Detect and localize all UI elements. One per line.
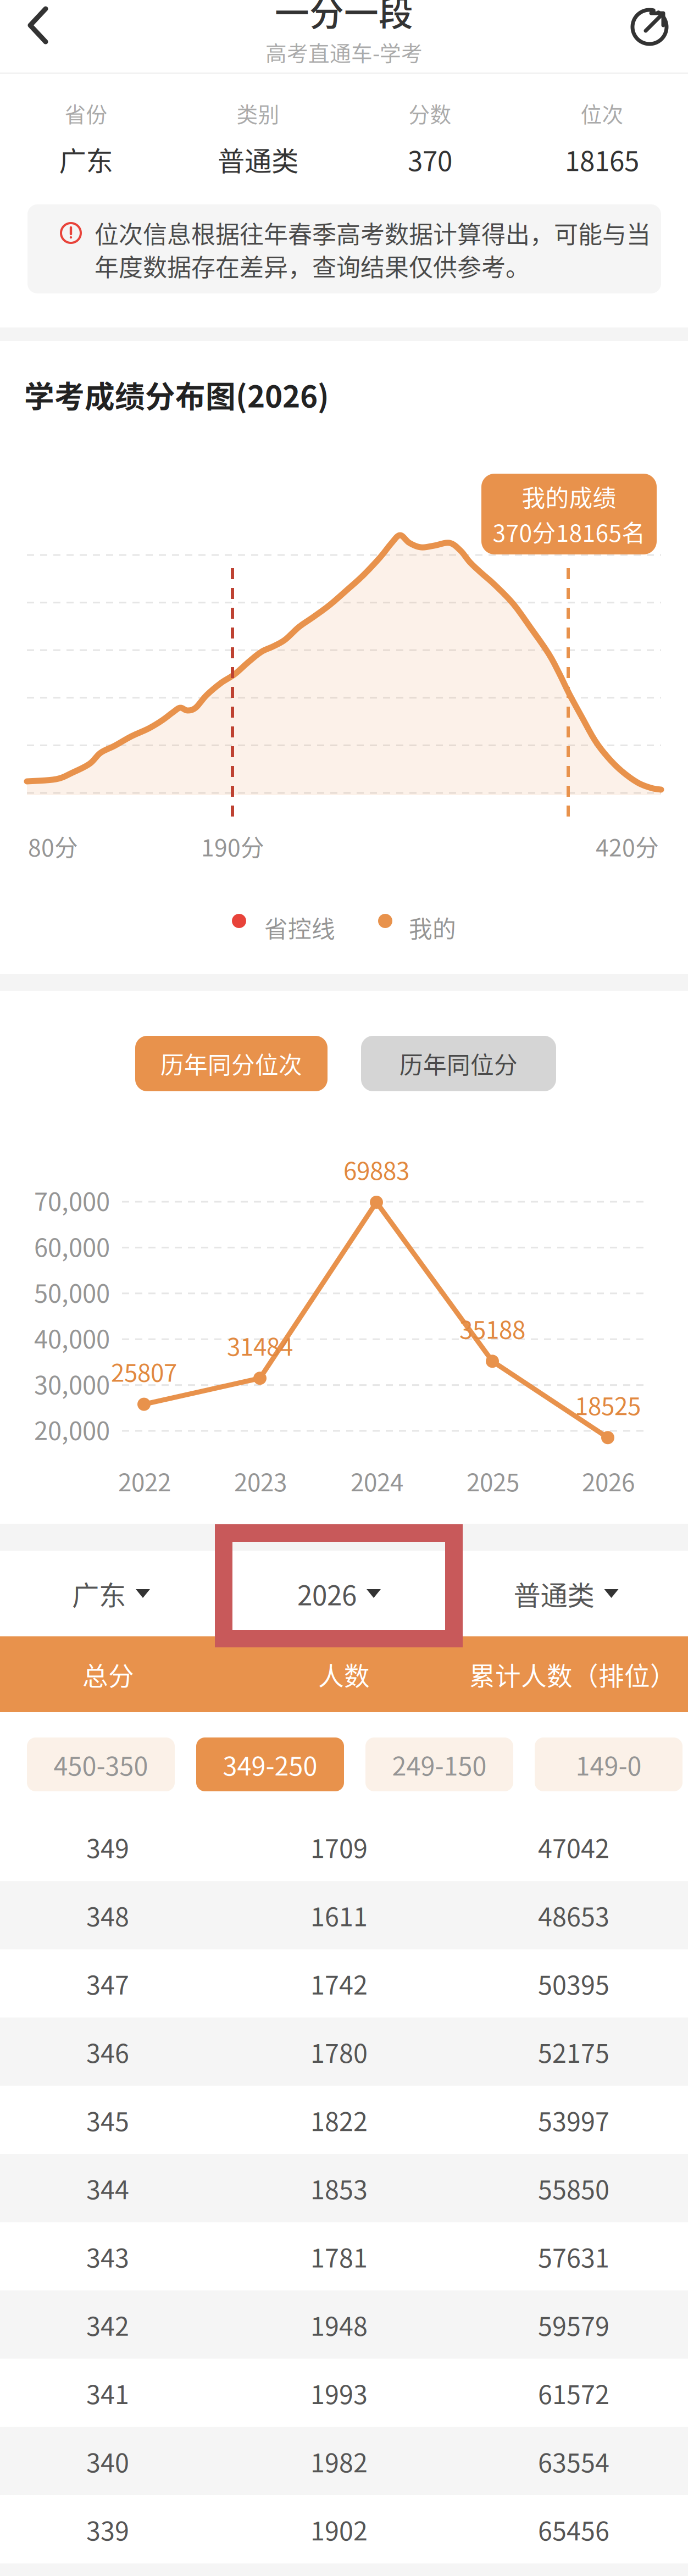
staticText: 广东	[59, 140, 113, 179]
staticText: 人数	[318, 1656, 370, 1693]
staticText: 50395	[538, 1965, 609, 2002]
button[interactable]: 450-350	[27, 1737, 175, 1791]
staticText: 342	[86, 2306, 129, 2343]
staticText: 1993	[310, 2374, 368, 2411]
staticText: 2024	[351, 1463, 403, 1498]
staticText: 345	[86, 2101, 129, 2138]
staticText: 149-0	[576, 1746, 642, 1783]
staticText: 1902	[310, 2511, 368, 2548]
staticText: 1781	[310, 2238, 368, 2275]
staticText: 344	[86, 2169, 129, 2207]
staticText: 年度数据存在差异，查询结果仅供参考。	[95, 248, 530, 283]
staticText: 35188	[459, 1311, 525, 1346]
staticText: 370分18165名	[493, 515, 645, 549]
staticText: 1709	[310, 1828, 368, 1865]
staticText: 2026	[582, 1463, 635, 1498]
staticText: 59579	[538, 2306, 609, 2343]
staticText: 65456	[538, 2511, 609, 2548]
staticText: 2026	[297, 1574, 357, 1613]
staticText: 18165	[565, 140, 639, 179]
staticText: 1948	[310, 2306, 368, 2343]
button[interactable]: 2026	[248, 1551, 430, 1636]
staticText: 450-350	[54, 1746, 148, 1783]
staticText: 55850	[538, 2169, 609, 2207]
staticText: 40,000	[34, 1319, 110, 1355]
staticText: 类别	[237, 98, 279, 129]
button[interactable]: 广东	[20, 1551, 202, 1636]
staticText: 1822	[310, 2101, 368, 2138]
staticText: 53997	[538, 2101, 609, 2138]
staticText: 累计人数（排位）	[469, 1656, 676, 1693]
staticText: 历年同分位次	[160, 1047, 302, 1081]
staticText: 31484	[227, 1328, 293, 1363]
staticText: 学考成绩分布图(2026)	[24, 373, 329, 416]
staticText: 一分一段	[275, 0, 413, 36]
staticText: 25807	[111, 1354, 177, 1389]
staticText: 2022	[118, 1463, 171, 1498]
staticText: 52175	[538, 2033, 609, 2070]
staticText: 总分	[82, 1656, 134, 1693]
staticText: 349-250	[223, 1746, 317, 1783]
staticText: 位次信息根据往年春季高考数据计算得出，可能与当	[95, 215, 651, 250]
staticText: 47042	[538, 1828, 609, 1865]
staticText: 70,000	[34, 1182, 110, 1218]
button[interactable]: 149-0	[535, 1737, 683, 1791]
staticText: 普通类	[514, 1574, 594, 1613]
staticText: 48653	[538, 1897, 609, 1934]
staticText: 249-150	[392, 1746, 487, 1783]
staticText: 343	[86, 2238, 129, 2275]
staticText: 370	[408, 140, 452, 179]
button[interactable]: 分享	[620, 0, 680, 53]
staticText: 高考直通车-学考	[265, 37, 423, 67]
staticText: 历年同位分	[400, 1047, 518, 1081]
staticText: 346	[86, 2033, 129, 2070]
staticText: 69883	[343, 1152, 409, 1187]
button[interactable]: 349-250	[196, 1737, 344, 1791]
staticText: 60,000	[34, 1228, 110, 1264]
staticText: 20,000	[34, 1411, 110, 1447]
button[interactable]: 249-150	[365, 1737, 513, 1791]
staticText: 我的	[409, 911, 456, 944]
staticText: 61572	[538, 2374, 609, 2411]
button[interactable]: 历年同位分	[361, 1036, 556, 1091]
staticText: 80分	[28, 829, 78, 863]
staticText: 省份	[65, 98, 107, 129]
button[interactable]: 返回	[8, 0, 68, 52]
staticText: 349	[86, 1828, 129, 1865]
staticText: 340	[86, 2442, 129, 2480]
staticText: 50,000	[34, 1274, 110, 1310]
staticText: 我的成绩	[522, 480, 616, 513]
staticText: 339	[86, 2511, 129, 2548]
button[interactable]: 历年同分位次	[135, 1036, 328, 1091]
staticText: 347	[86, 1965, 129, 2002]
staticText: 420分	[596, 829, 659, 863]
staticText: 57631	[538, 2238, 609, 2275]
staticText: 30,000	[34, 1365, 110, 1401]
staticText: 1780	[310, 2033, 368, 2070]
staticText: 省控线	[264, 911, 335, 944]
button[interactable]: 普通类	[475, 1551, 657, 1636]
staticText: 18525	[575, 1387, 641, 1422]
staticText: 2025	[467, 1463, 519, 1498]
staticText: 位次	[581, 98, 623, 129]
staticText: 1742	[310, 1965, 368, 2002]
staticText: 1853	[310, 2169, 368, 2207]
staticText: 1611	[310, 1897, 368, 1934]
staticText: 190分	[201, 829, 264, 863]
staticText: 341	[86, 2374, 129, 2411]
staticText: 348	[86, 1897, 129, 1934]
staticText: 普通类	[218, 140, 298, 179]
staticText: 2023	[234, 1463, 287, 1498]
staticText: 广东	[72, 1574, 126, 1613]
staticText: 分数	[409, 98, 451, 129]
staticText: 63554	[538, 2442, 609, 2480]
staticText: 1982	[310, 2442, 368, 2480]
